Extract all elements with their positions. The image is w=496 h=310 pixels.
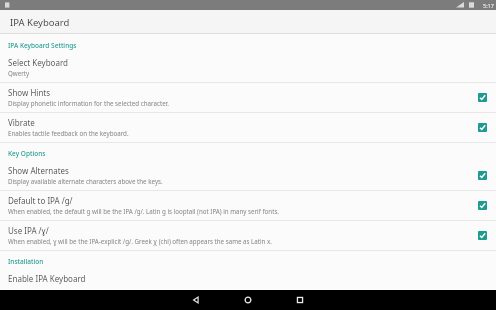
button[interactable]: Enable IPA Keyboard xyxy=(0,269,496,290)
button[interactable]: Recent apps xyxy=(285,290,315,310)
button[interactable]: Toggle setting xyxy=(476,169,488,181)
staticText: Installation xyxy=(8,257,44,266)
button[interactable]: Select Keyboard xyxy=(0,53,496,82)
button[interactable]: Back xyxy=(181,290,211,310)
staticText: Show Alternates xyxy=(8,165,69,176)
button[interactable]: Toggle setting xyxy=(476,199,488,211)
button[interactable]: Toggle setting xyxy=(476,121,488,133)
staticText: IPA Keyboard Settings xyxy=(8,41,77,50)
staticText: Select Keyboard xyxy=(8,57,68,68)
staticText: Key Options xyxy=(8,149,46,158)
button[interactable]: Show Alternates xyxy=(0,161,496,190)
button[interactable]: Home xyxy=(233,290,263,310)
staticText: Default to IPA /g/ xyxy=(8,195,73,206)
staticText: When enabled, the default g will be the … xyxy=(8,207,280,215)
staticText: Enables tactile feedback on the keyboard… xyxy=(8,129,129,137)
staticText: IPA Keyboard xyxy=(10,16,70,29)
staticText: Enable IPA Keyboard xyxy=(8,273,86,284)
staticText: Qwerty xyxy=(8,69,30,77)
staticText: Show Hints xyxy=(8,87,51,98)
button[interactable]: Toggle setting xyxy=(476,91,488,103)
button[interactable]: Show Hints xyxy=(0,83,496,112)
staticText: When enabled, ɣ will be the IPA-explicit… xyxy=(8,237,272,245)
staticText: 5:17 xyxy=(483,2,494,9)
staticText: Vibrate xyxy=(8,117,35,128)
staticText: Display available alternate characters a… xyxy=(8,177,163,185)
button[interactable]: Default to IPA /g/ xyxy=(0,191,496,220)
staticText: Use IPA /ɣ/ xyxy=(8,225,49,236)
button[interactable]: Toggle setting xyxy=(476,229,488,241)
button[interactable]: Vibrate xyxy=(0,113,496,142)
button[interactable]: Use IPA /ɣ/ xyxy=(0,221,496,250)
staticText: Display phonetic information for the sel… xyxy=(8,99,169,107)
